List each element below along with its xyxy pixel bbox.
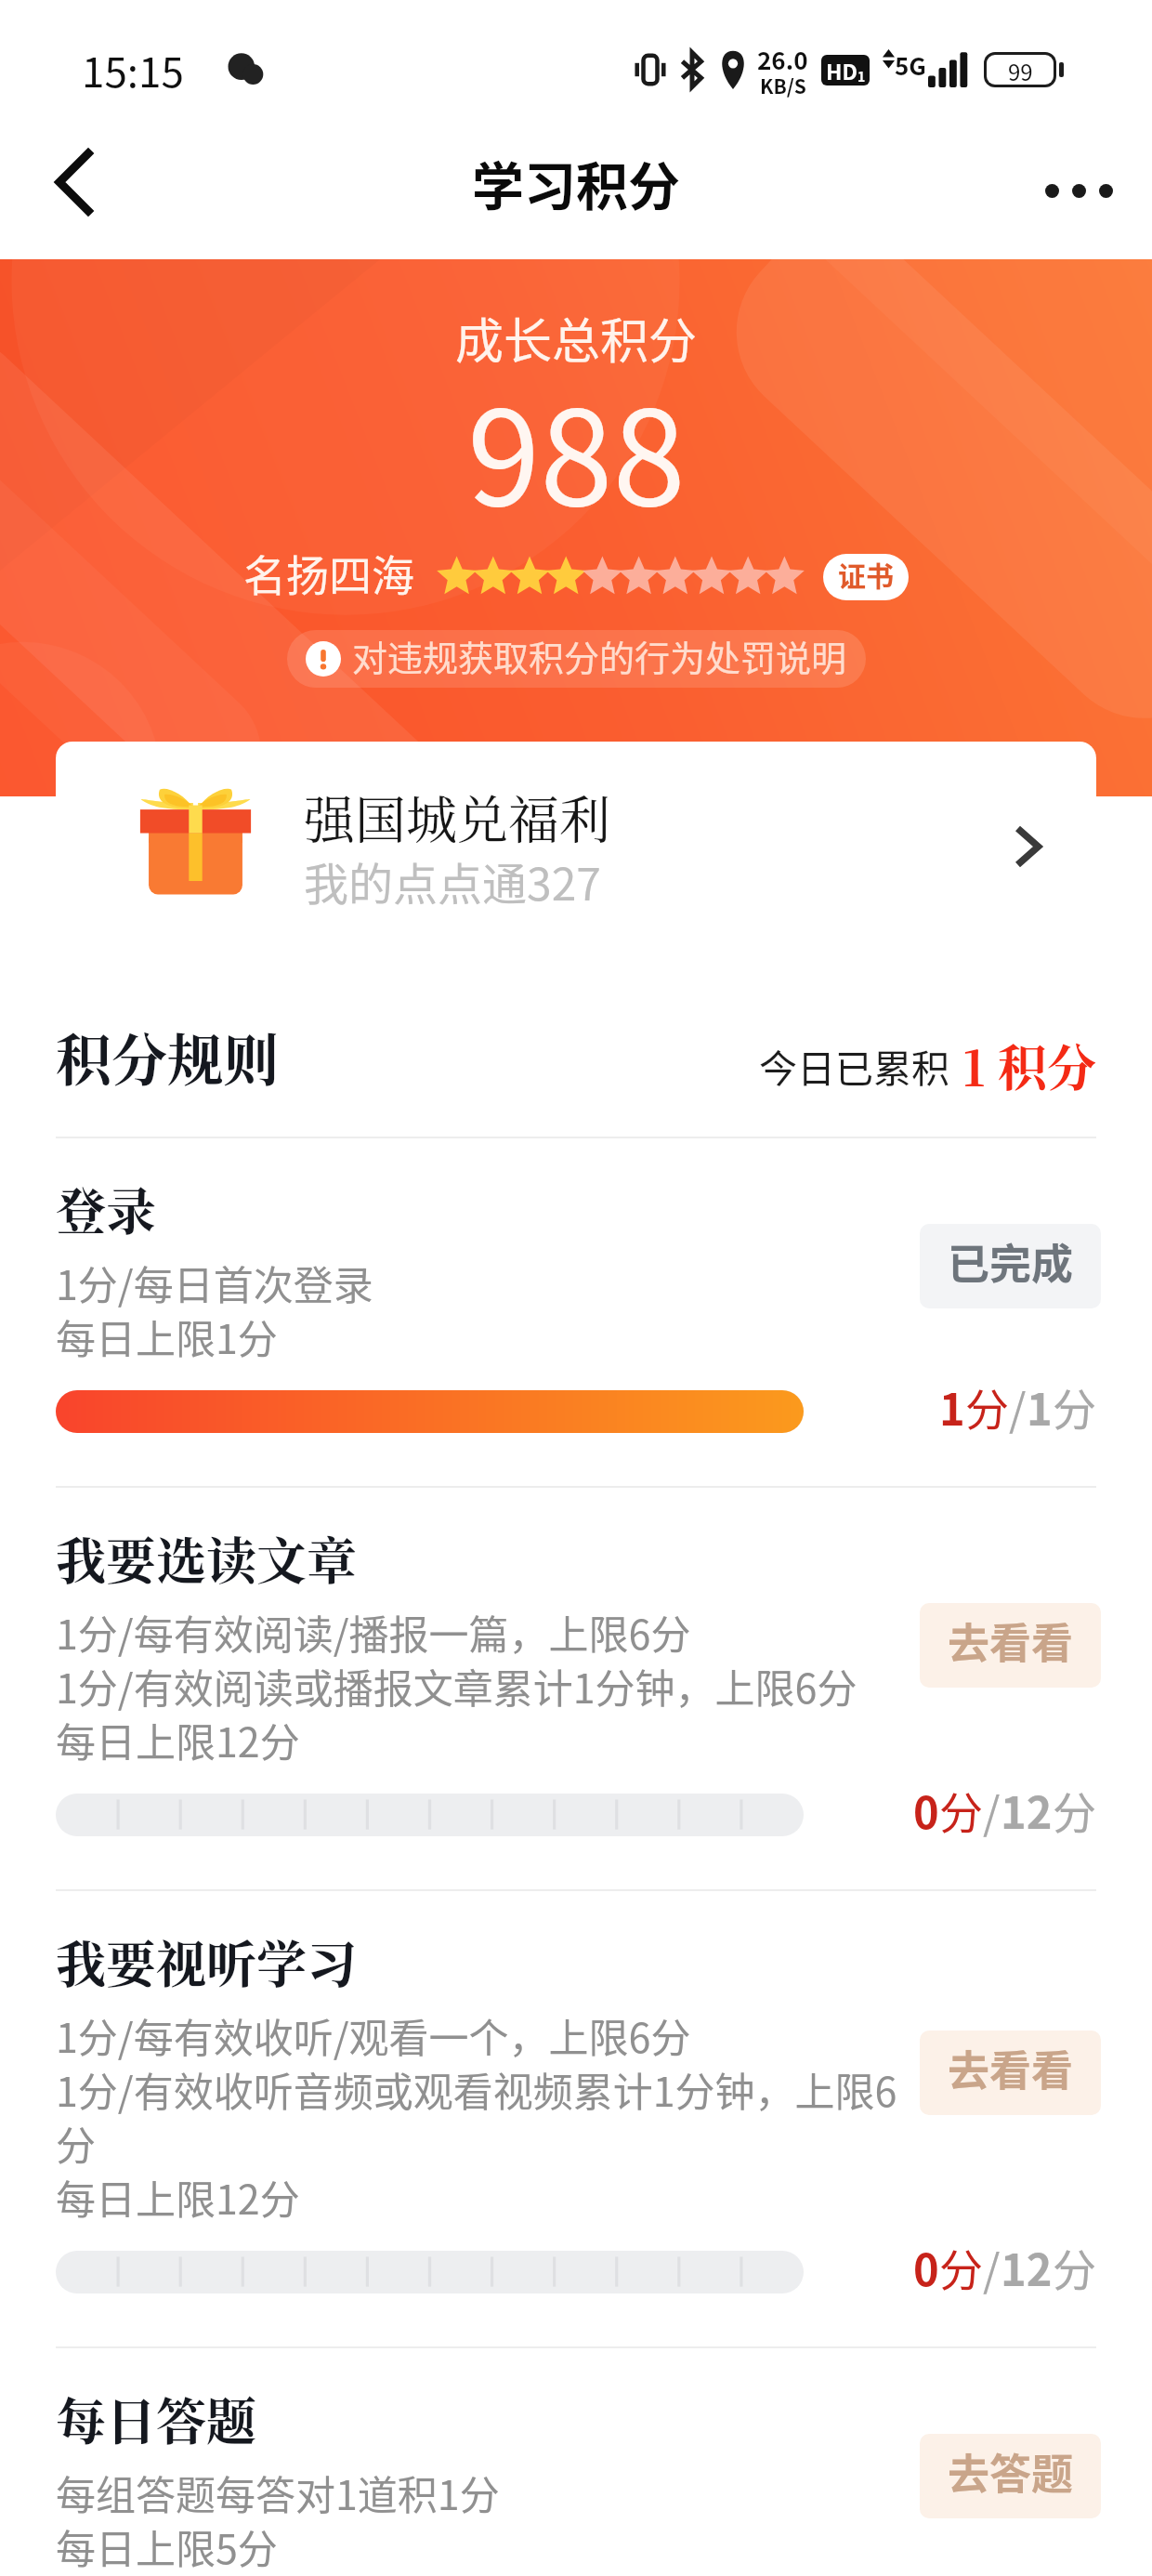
staticText: 12 [1001,2249,1053,2295]
staticText: 分 [939,2249,983,2295]
staticText: 学习积分 [472,145,680,220]
staticText: 0 [913,2249,939,2295]
button[interactable]: 证书 [823,554,909,600]
staticText: 每日上限12分 [56,1715,300,1768]
button[interactable]: Back [22,139,124,242]
staticText: 每组答题每答对1道积1分 [56,2467,500,2521]
staticText: 988 [467,394,686,533]
staticText: 0 [913,1792,939,1838]
staticText: 对违规获取积分的行为处罚说明 [352,638,847,679]
staticText: 去答题 [948,2454,1074,2499]
staticText: 1 [857,67,866,85]
staticText: 分 [1053,1792,1096,1838]
staticText: 1 积分 [962,1045,1096,1097]
staticText: / [1009,1388,1027,1435]
staticText: 去看看 [948,2051,1074,2096]
staticText: 99 [1008,55,1033,85]
staticText: 强国城兑福利 [304,795,611,849]
staticText: 1 [939,1388,965,1435]
button[interactable]: 已完成 [920,1224,1101,1308]
button[interactable]: 去答题 [920,2434,1101,2518]
staticText: 1分/每有效收听/观看一个，上限6分 [56,2010,691,2064]
staticText: 名扬四海 [243,554,414,600]
button[interactable]: 去看看 [920,2031,1101,2115]
staticText: 证书 [838,562,894,592]
button[interactable]: 去看看 [920,1603,1101,1688]
staticText: 每日上限5分 [56,2521,278,2575]
staticText: 15:15 [82,40,184,99]
staticText: 每日答题 [56,2398,256,2451]
staticText: 我要视听学习 [56,1940,357,1994]
button[interactable]: More options [1028,139,1130,242]
staticText: 1分/有效阅读或播报文章累计1分钟，上限6分 [56,1661,857,1715]
button[interactable]: 强国城兑福利 [56,742,1096,953]
staticText: 我的点点通327 [304,863,601,910]
staticText: KB/S [760,77,806,98]
staticText: 分 [939,1792,983,1838]
staticText: 12 [1001,1792,1053,1838]
staticText: 分 [1053,1388,1096,1435]
staticText: / [983,2249,1001,2295]
staticText: 今日已累积 [759,1050,949,1091]
staticText: 1分/有效收听音频或观看视频累计1分钟，上限6分 [56,2064,920,2172]
staticText: 去看看 [948,1623,1074,1668]
staticText: 5G [895,47,926,83]
staticText: 1 [1027,1388,1053,1435]
staticText: 成长总积分 [455,317,698,369]
staticText: 每日上限1分 [56,1311,278,1365]
staticText: 26.0 [757,42,808,77]
staticText: 分 [1053,2249,1096,2295]
staticText: 我要选读文章 [56,1537,357,1591]
staticText: 每日上限12分 [56,2172,300,2226]
staticText: 已完成 [948,1244,1074,1289]
button[interactable]: 对违规获取积分的行为处罚说明 [287,630,866,688]
staticText: 分 [965,1388,1009,1435]
staticText: 积分规则 [56,1033,279,1093]
staticText: 登录 [56,1188,156,1242]
staticText: 1分/每日首次登录 [56,1257,373,1311]
staticText: HD [826,55,857,85]
staticText: 1分/每有效阅读/播报一篇，上限6分 [56,1607,691,1661]
staticText: / [983,1792,1001,1838]
